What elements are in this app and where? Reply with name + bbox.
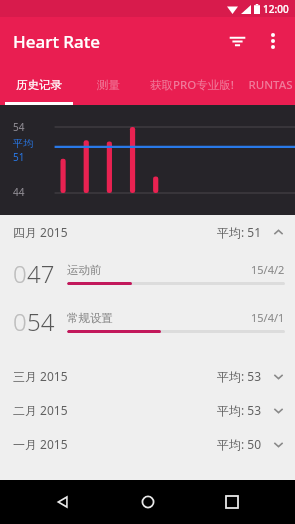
staticText: 54 [13,120,25,134]
staticText: 0 [13,305,27,338]
staticText: 运动前 [67,263,102,277]
staticText: 平均: 50 [217,436,262,452]
staticText: 平均: 51 [217,224,262,240]
staticText: 平均: 53 [217,368,262,384]
button[interactable]: RUNTASTIC [246,65,295,105]
staticText: 平均 [13,137,33,150]
button[interactable]: Back [41,480,85,524]
staticText: 获取PRO专业版! [150,77,234,93]
button[interactable]: Home [126,480,170,524]
button[interactable]: 三月 2015 [0,359,295,393]
button[interactable]: 四月 2015 [0,215,295,249]
button[interactable]: More options [256,24,290,58]
staticText: 常规设置 [67,311,113,325]
staticText: 15/4/1 [251,310,285,325]
staticText: RUNTASTIC [246,77,295,93]
button[interactable]: 历史记录 [0,65,78,105]
button[interactable]: 0 [0,249,295,297]
staticText: 一月 2015 [13,436,68,452]
staticText: Heart Rate [13,30,101,53]
button[interactable]: Recent apps [210,480,254,524]
staticText: 二月 2015 [13,402,68,418]
staticText: 四月 2015 [13,224,68,240]
button[interactable]: 获取PRO专业版! [138,65,246,105]
staticText: 测量 [97,78,120,92]
staticText: 44 [13,185,25,199]
staticText: 平均: 53 [217,402,262,418]
staticText: 47 [27,257,55,290]
staticText: 54 [27,305,55,338]
button[interactable]: Filter [218,22,256,60]
button[interactable]: 0 [0,297,295,345]
staticText: 51 [13,150,25,164]
button[interactable]: 测量 [78,65,138,105]
staticText: 12:00 [263,2,289,16]
staticText: 三月 2015 [13,368,68,384]
staticText: 历史记录 [16,78,62,92]
button[interactable]: 二月 2015 [0,393,295,427]
staticText: 0 [13,257,27,290]
button[interactable]: 一月 2015 [0,427,295,461]
staticText: 15/4/2 [251,262,285,277]
